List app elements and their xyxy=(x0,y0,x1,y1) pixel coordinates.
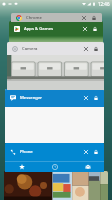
button[interactable]: Close xyxy=(81,93,91,103)
button[interactable]: Messenger xyxy=(5,89,104,143)
button[interactable]: Close xyxy=(81,147,91,157)
staticText: Messenger xyxy=(20,95,81,101)
button[interactable]: Apps & Games xyxy=(9,21,103,42)
button[interactable]: Lock task xyxy=(90,24,100,34)
button[interactable]: Chrome xyxy=(11,13,102,22)
staticText: Chrome xyxy=(26,15,79,21)
button[interactable]: Recents xyxy=(38,162,71,172)
button[interactable]: Camera xyxy=(7,42,104,55)
button[interactable] xyxy=(4,171,108,200)
button[interactable]: Phone xyxy=(5,143,104,161)
button[interactable]: Close xyxy=(79,13,89,22)
staticText: Camera xyxy=(22,46,81,52)
button[interactable]: Lock task xyxy=(91,147,101,157)
button[interactable]: Lock task xyxy=(89,13,99,22)
button[interactable]: Close xyxy=(81,44,91,54)
button[interactable]: Close xyxy=(80,24,90,34)
button[interactable]: Apps & Games xyxy=(9,21,103,36)
staticText: Phone xyxy=(20,149,81,155)
button[interactable]: Lock task xyxy=(91,93,101,103)
button[interactable]: Camera xyxy=(7,42,104,90)
button[interactable]: Contacts xyxy=(71,162,104,172)
staticText: Apps & Games xyxy=(24,26,80,32)
button[interactable]: Chrome xyxy=(11,13,102,22)
button[interactable]: Phone xyxy=(5,143,104,172)
button[interactable]: Lock task xyxy=(91,44,101,54)
button[interactable]: Favorites xyxy=(5,162,38,172)
staticText: 12:46 xyxy=(98,1,110,7)
button[interactable]: Messenger xyxy=(5,89,104,107)
